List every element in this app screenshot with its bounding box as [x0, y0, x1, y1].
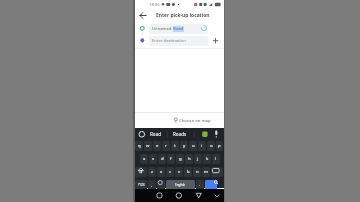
staticText: ?123 — [138, 183, 145, 187]
staticText: s — [152, 156, 155, 162]
staticText: l — [215, 156, 217, 162]
staticText: , — [151, 182, 153, 188]
staticText: j — [197, 156, 199, 162]
staticText: Choose on map — [179, 117, 211, 123]
staticText: t — [174, 143, 176, 149]
button[interactable] — [205, 180, 217, 190]
button[interactable]: f — [167, 154, 175, 164]
staticText: m — [204, 169, 208, 175]
button[interactable]: w — [144, 141, 152, 151]
staticText: f — [170, 156, 172, 162]
staticText: x — [160, 169, 163, 175]
button[interactable]: Unnamed — [149, 24, 208, 34]
staticText: v — [178, 169, 181, 175]
staticText: z — [151, 169, 153, 175]
staticText: Enter destination — [152, 38, 186, 44]
button[interactable]: z — [148, 167, 156, 177]
staticText: English — [175, 183, 186, 187]
button[interactable] — [211, 167, 223, 177]
button[interactable]: Roads — [173, 131, 187, 137]
staticText: h — [188, 156, 191, 162]
button[interactable]: b — [184, 167, 192, 177]
staticText: u — [192, 143, 195, 149]
button[interactable]: , — [148, 180, 156, 190]
button[interactable]: c — [166, 167, 174, 177]
staticText: b — [187, 169, 190, 175]
button[interactable]: p — [216, 141, 223, 151]
staticText: n — [196, 169, 199, 175]
button[interactable]: ?123 — [135, 180, 147, 190]
button[interactable]: y — [180, 141, 188, 151]
button[interactable]: h — [185, 154, 193, 164]
button[interactable]: v — [175, 167, 183, 177]
staticText: i — [201, 143, 203, 149]
staticText: Road — [173, 26, 184, 32]
button[interactable]: . — [196, 180, 204, 190]
staticText: p — [218, 143, 221, 149]
button[interactable]: s — [149, 154, 157, 164]
button[interactable]: l — [212, 154, 220, 164]
staticText: g — [179, 156, 182, 162]
staticText: . — [199, 182, 201, 188]
button[interactable] — [157, 180, 165, 190]
staticText: k — [206, 156, 209, 162]
button[interactable]: x — [157, 167, 165, 177]
button[interactable]: n — [193, 167, 201, 177]
button[interactable]: English — [166, 180, 195, 190]
button[interactable]: r — [162, 141, 170, 151]
staticText: a — [143, 156, 146, 162]
button[interactable]: i — [198, 141, 206, 151]
staticText: e — [156, 143, 159, 149]
staticText: o — [210, 143, 213, 149]
button[interactable]: o — [207, 141, 215, 151]
button[interactable]: d — [158, 154, 166, 164]
button[interactable]: Road — [150, 131, 162, 137]
button[interactable]: Enter pick-up location — [156, 12, 210, 19]
button[interactable]: Enter destination — [149, 36, 208, 46]
button[interactable]: k — [203, 154, 211, 164]
staticText: d — [161, 156, 164, 162]
button[interactable] — [135, 167, 147, 177]
staticText: 18:56 — [149, 2, 160, 8]
staticText: q — [138, 143, 141, 149]
button[interactable]: a — [140, 154, 148, 164]
staticText: w — [146, 143, 150, 149]
staticText: Unnamed — [152, 26, 173, 32]
button[interactable]: q — [135, 141, 143, 151]
button[interactable] — [135, 113, 224, 128]
button[interactable]: g — [176, 154, 184, 164]
staticText: r — [165, 143, 167, 149]
button[interactable]: m — [202, 167, 210, 177]
staticText: c — [169, 169, 172, 175]
staticText: y — [183, 143, 186, 149]
button[interactable]: t — [171, 141, 179, 151]
button[interactable]: u — [189, 141, 197, 151]
button[interactable]: e — [153, 141, 161, 151]
button[interactable]: j — [194, 154, 202, 164]
